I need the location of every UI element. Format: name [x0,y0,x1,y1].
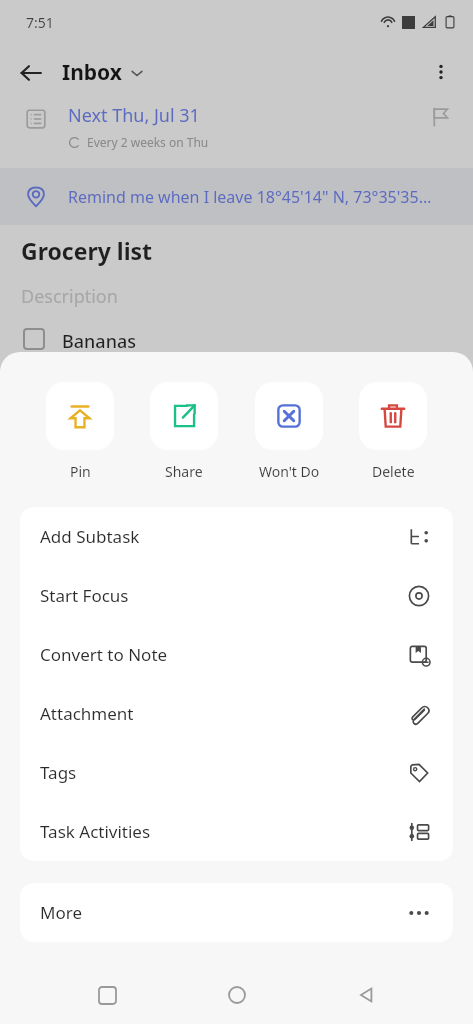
staticText: Description [21,284,118,309]
button[interactable]: More [20,883,453,942]
staticText: Start Focus [40,584,407,607]
staticText: Grocery list [21,235,153,266]
other: More options [431,62,451,82]
staticText: Every 2 weeks on Thu [87,134,209,150]
button[interactable]: Pin [42,382,118,481]
button[interactable]: Convert to Note [20,625,453,684]
staticText: Tags [40,761,407,784]
staticText: 7:51 [26,13,54,32]
button[interactable]: Add Subtask [20,507,453,566]
staticText: Inbox [62,58,122,87]
staticText: Add Subtask [40,525,407,548]
button[interactable]: Share [146,382,222,481]
button[interactable]: Recents [85,973,129,1017]
staticText: Remind me when I leave 18°45'14" N, 73°3… [68,186,432,208]
staticText: Task Activities [40,820,407,843]
button[interactable]: Back [344,973,388,1017]
staticText: Convert to Note [40,643,407,666]
button[interactable]: Tags [20,743,453,802]
button[interactable]: Home [215,973,259,1017]
staticText: Delete [372,462,415,481]
button[interactable]: Won't Do [251,382,327,481]
other: Back [18,60,44,86]
staticText: Next Thu, Jul 31 [68,103,200,128]
staticText: Won't Do [259,462,320,481]
staticText: More [40,901,407,924]
staticText: Share [165,462,203,481]
button[interactable]: Delete [355,382,431,481]
staticText: Bananas [62,329,136,354]
button[interactable]: Start Focus [20,566,453,625]
button[interactable]: Task Activities [20,802,453,861]
button[interactable]: Attachment [20,684,453,743]
staticText: Attachment [40,702,407,725]
staticText: Pin [70,462,91,481]
